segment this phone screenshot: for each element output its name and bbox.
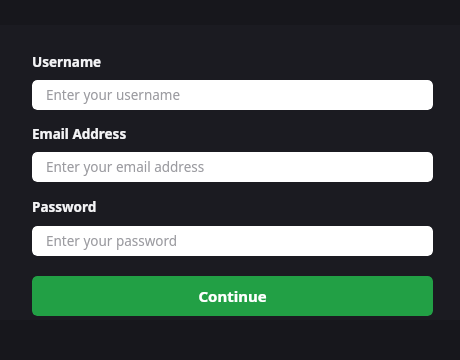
staticText: Enter your username xyxy=(46,86,181,104)
staticText: Username xyxy=(32,53,102,71)
button[interactable]: Continue xyxy=(32,276,433,316)
button[interactable]: Enter your password xyxy=(32,226,433,256)
staticText: Password xyxy=(32,198,97,216)
button[interactable]: Enter your username xyxy=(32,80,433,110)
staticText: Continue xyxy=(198,286,267,306)
staticText: Enter your password xyxy=(46,232,178,250)
staticText: Email Address xyxy=(32,125,127,143)
button[interactable]: Enter your email address xyxy=(32,152,433,182)
staticText: Enter your email address xyxy=(46,158,205,176)
